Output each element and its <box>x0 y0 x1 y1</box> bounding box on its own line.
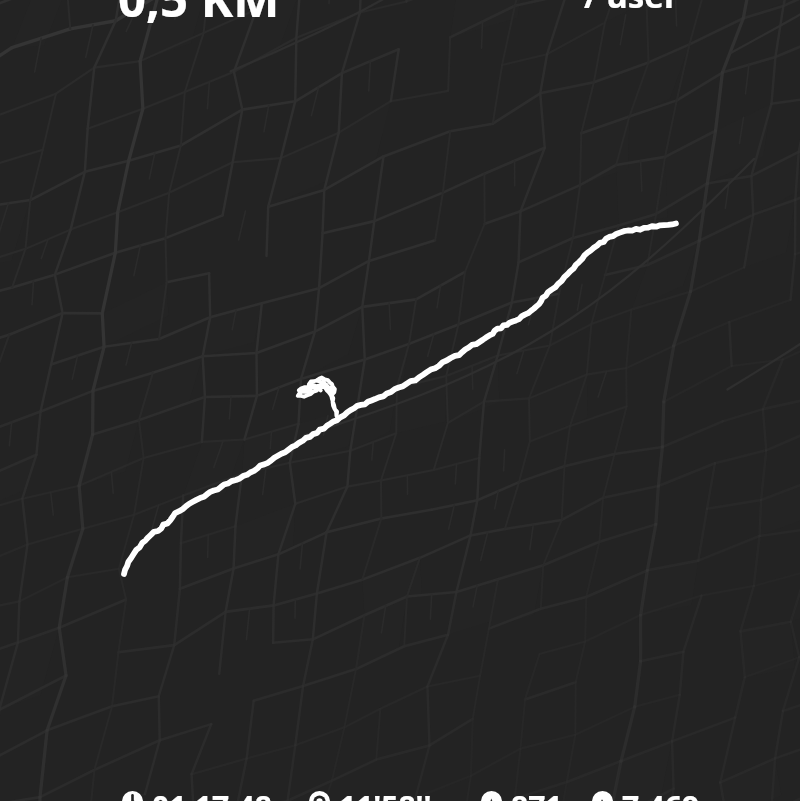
staticText: 7.469 <box>622 786 700 801</box>
staticText: / user <box>584 0 679 18</box>
button[interactable]: Duration 01:17:48 <box>122 791 242 801</box>
button[interactable]: 871 calories <box>481 791 533 801</box>
button[interactable]: Pace per user <box>584 0 679 18</box>
staticText: 871 <box>511 786 563 801</box>
button[interactable]: Distance 0,5 KM <box>118 0 280 32</box>
staticText: 01:17:48 <box>152 786 272 801</box>
button[interactable]: Average pace 11'58'' <box>309 791 402 801</box>
staticText: 11'58'' <box>339 786 432 801</box>
button[interactable]: 7469 steps <box>592 791 670 801</box>
staticText: 0,5 KM <box>118 0 280 32</box>
